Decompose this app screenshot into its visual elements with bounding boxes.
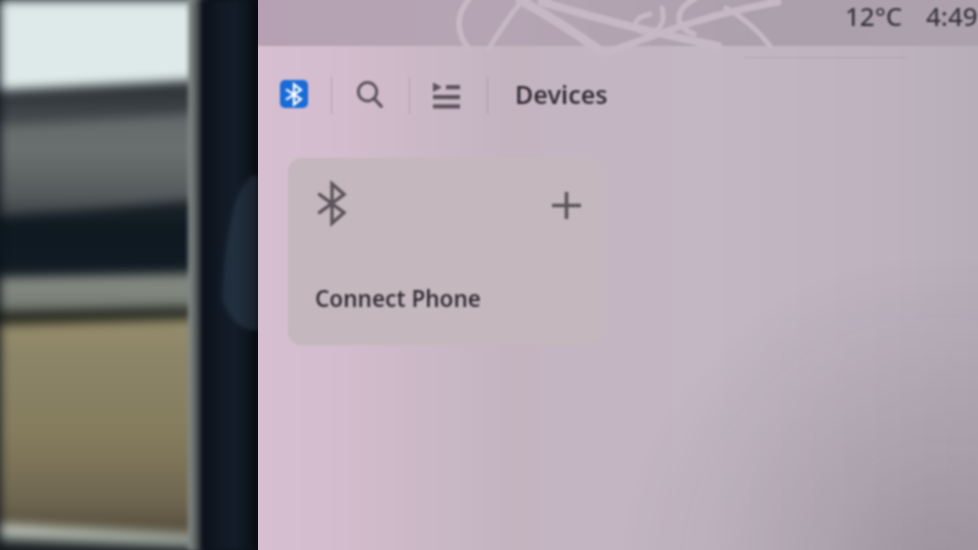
- staticText: 12°C: [845, 0, 903, 33]
- button[interactable]: Connect Phone: [288, 158, 602, 345]
- button[interactable]: Media queue: [427, 76, 465, 114]
- button[interactable]: Bluetooth: [280, 80, 308, 108]
- staticText: Connect Phone: [315, 283, 481, 314]
- staticText: 4:49: [926, 0, 978, 33]
- button[interactable]: Search: [350, 75, 390, 115]
- staticText: Devices: [515, 77, 608, 111]
